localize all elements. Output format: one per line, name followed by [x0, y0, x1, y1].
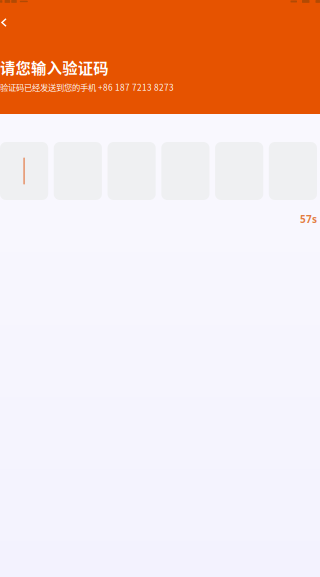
button[interactable]: Verification code digit — [0, 142, 48, 200]
button[interactable]: Back — [0, 3, 320, 31]
staticText: 验证码已经发送到您的手机 +86 187 7213 8273 — [0, 81, 174, 93]
staticText: 请您输入验证码 — [0, 56, 108, 78]
staticText: 57s — [300, 212, 317, 226]
button[interactable]: 57s — [0, 213, 320, 225]
